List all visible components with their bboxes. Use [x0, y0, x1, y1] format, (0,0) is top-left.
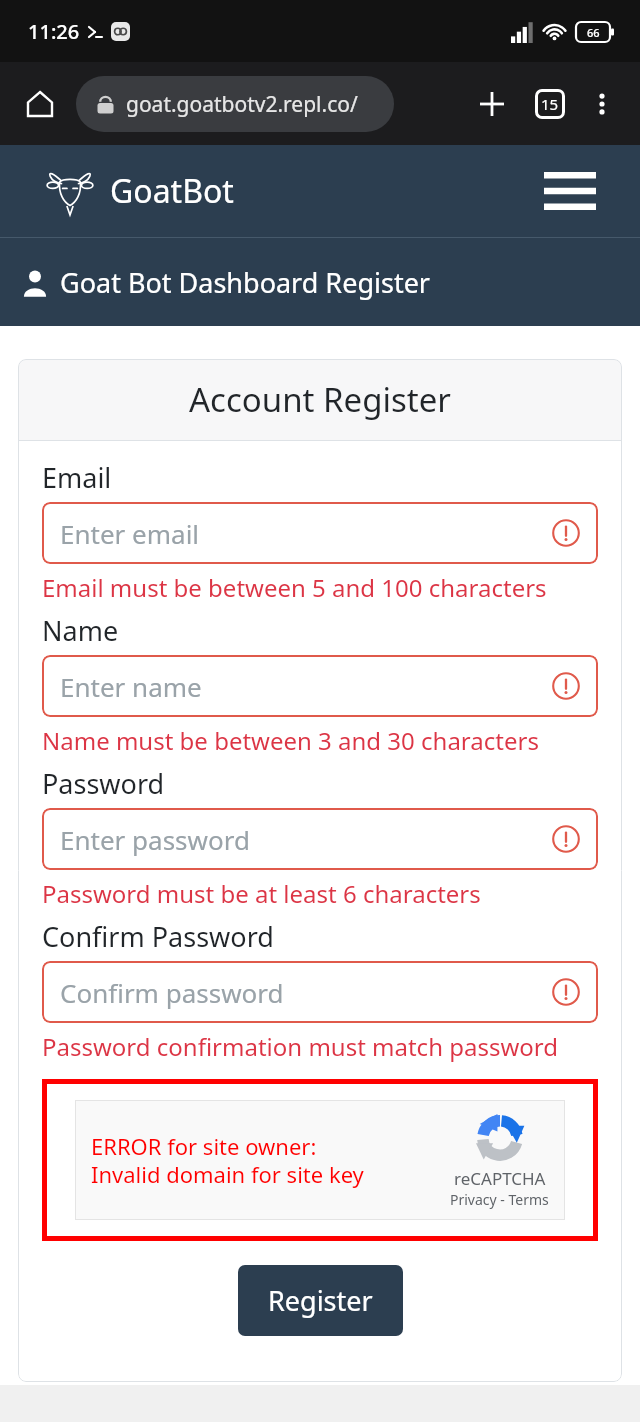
staticText: Enter email — [60, 516, 200, 551]
staticText: Name must be between 3 and 30 characters — [42, 724, 539, 757]
staticText: GoatBot — [110, 169, 234, 213]
button[interactable]: New tab — [468, 80, 516, 128]
staticText: 15 — [541, 94, 559, 114]
staticText: ERROR for site owner: Invalid domain for… — [91, 1131, 364, 1189]
button[interactable]: ERROR for site owner: Invalid domain for… — [75, 1100, 565, 1220]
staticText: 66 — [587, 25, 600, 40]
button[interactable]: Tabs, 15 open — [526, 80, 574, 128]
staticText: Password must be at least 6 characters — [42, 877, 481, 910]
staticText: Enter password — [60, 822, 250, 857]
button[interactable]: Enter email — [42, 502, 598, 564]
staticText: Goat Bot Dashboard Register — [60, 264, 431, 301]
staticText: Confirm password — [60, 975, 284, 1010]
staticText: reCAPTCHA — [454, 1167, 546, 1190]
staticText: Password confirmation must match passwor… — [42, 1030, 558, 1063]
staticText: Password — [42, 765, 165, 802]
button[interactable]: Enter password — [42, 808, 598, 870]
staticText: Email — [42, 459, 112, 496]
button[interactable]: More options — [580, 82, 624, 126]
button[interactable]: Home — [16, 80, 64, 128]
button[interactable]: goat.goatbotv2.repl.co/reg — [76, 76, 394, 132]
staticText: Name — [42, 612, 119, 649]
button[interactable]: Menu — [542, 163, 598, 219]
button[interactable]: Register — [238, 1265, 403, 1336]
staticText: goat.goatbotv2.repl.co/reg — [126, 90, 382, 119]
staticText: Confirm Password — [42, 918, 274, 955]
button[interactable]: Enter name — [42, 655, 598, 717]
staticText: Account Register — [189, 377, 451, 422]
button[interactable]: Confirm password — [42, 961, 598, 1023]
staticText: Privacy - Terms — [450, 1190, 549, 1209]
staticText: Email must be between 5 and 100 characte… — [42, 571, 547, 604]
staticText: Enter name — [60, 669, 202, 704]
staticText: Register — [268, 1282, 373, 1319]
staticText: 11:26 — [28, 18, 80, 45]
